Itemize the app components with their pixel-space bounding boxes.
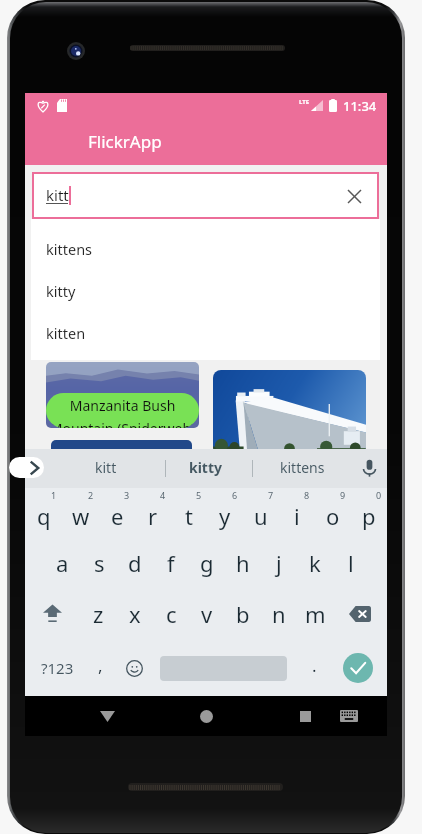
staticText: o [326,501,340,531]
staticText: 8 [304,489,310,501]
staticText: 3 [124,489,130,501]
button[interactable]: v [189,588,225,640]
button[interactable]: u [243,488,279,538]
button[interactable]: kitten [31,312,380,354]
staticText: kitt [95,458,117,477]
button[interactable]: kittens [31,228,380,270]
staticText: 2 [88,489,94,501]
staticText: kitty [189,458,223,477]
staticText: kittens [46,239,93,259]
staticText: q [37,501,51,531]
button[interactable]: Expand suggestions [9,457,44,478]
button[interactable]: y [207,488,243,538]
button[interactable]: kittens [252,449,352,488]
button[interactable]: kitt [78,449,134,488]
staticText: f [167,548,175,578]
staticText: kitt [46,185,69,205]
button[interactable]: s [81,538,117,588]
staticText: d [128,548,142,578]
staticText: s [94,548,105,578]
button[interactable]: f [153,538,189,588]
staticText: Manzanita Bush Mountain (Spiderweb) [46,396,199,428]
button[interactable]: z [80,588,117,640]
staticText: ?123 [41,658,74,678]
staticText: FlickrApp [88,130,162,153]
staticText: c [166,599,177,629]
staticText: u [254,501,268,531]
staticText: l [348,548,354,578]
staticText: 7 [268,489,274,501]
button[interactable]: q [25,488,62,538]
button[interactable]: x [117,588,153,640]
button[interactable]: m [297,588,333,640]
staticText: n [272,599,286,629]
staticText: v [201,599,213,629]
button[interactable]: kitt [32,172,379,219]
button[interactable]: ?123 [34,640,80,696]
staticText: z [93,599,104,629]
button[interactable]: w [62,488,99,538]
button[interactable]: Space [151,640,296,696]
button[interactable]: kitty [31,270,380,312]
button[interactable]: a [44,538,81,588]
button[interactable]: Home [189,699,223,733]
staticText: r [148,501,158,531]
staticText: 9 [340,489,346,501]
staticText: a [56,548,69,578]
staticText: 4 [160,489,166,501]
button[interactable]: Clear search [341,183,367,209]
staticText: y [219,501,231,531]
staticText: k [309,548,321,578]
button[interactable]: l [333,538,369,588]
button[interactable]: p [351,488,387,538]
button[interactable]: Recent apps [288,699,322,733]
staticText: 6 [232,489,238,501]
staticText: LTE [299,98,310,106]
button[interactable]: b [225,588,261,640]
button[interactable]: r [135,488,171,538]
button[interactable]: e [99,488,135,538]
staticText: m [305,599,326,629]
button[interactable]: g [189,538,225,588]
staticText: kitten [46,323,86,343]
button[interactable]: h [225,538,261,588]
button[interactable]: Switch keyboard [335,702,363,730]
button[interactable]: Emoji [118,640,151,696]
staticText: w [72,501,90,531]
staticText: e [111,501,124,531]
button[interactable]: Manzanita Bush Mountain (Spiderweb) [46,393,199,428]
staticText: 5 [196,489,202,501]
staticText: 0 [376,489,382,501]
staticText: b [236,599,250,629]
button[interactable]: o [315,488,351,538]
staticText: , [98,654,103,677]
button[interactable]: c [153,588,189,640]
button[interactable]: Back [90,699,124,733]
staticText: . [312,654,317,677]
button[interactable]: j [261,538,297,588]
button[interactable]: t [171,488,207,538]
button[interactable]: n [261,588,297,640]
staticText: x [129,599,141,629]
button[interactable]: d [117,538,153,588]
button[interactable]: kitty [175,449,237,488]
button[interactable]: Backspace [333,588,387,640]
staticText: p [362,501,376,531]
button[interactable]: Shift [25,588,80,640]
button[interactable]: Enter [333,640,383,696]
staticText: g [200,548,214,578]
staticText: 11:34 [343,97,377,115]
button[interactable]: Voice input [358,457,380,479]
staticText: 1 [51,489,57,501]
button[interactable]: , [80,640,120,696]
staticText: t [185,501,193,531]
staticText: kittens [280,458,325,477]
staticText: i [294,501,300,531]
staticText: j [276,548,282,578]
button[interactable]: k [297,538,333,588]
staticText: h [236,548,250,578]
button[interactable]: i [279,488,315,538]
staticText: kitty [46,281,76,301]
button[interactable]: . [296,640,333,696]
